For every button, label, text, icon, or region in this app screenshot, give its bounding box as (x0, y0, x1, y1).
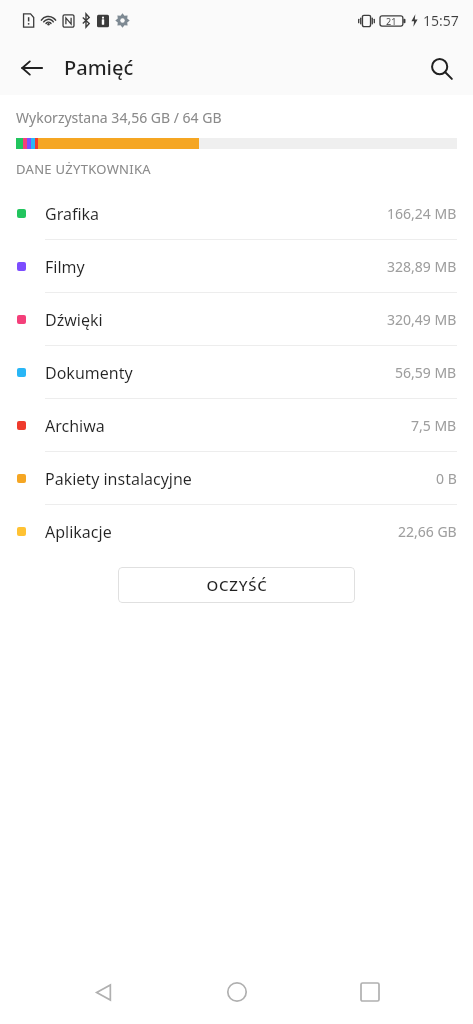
button[interactable]: Search (417, 44, 465, 92)
staticText: 320,49 MB (387, 310, 457, 329)
staticText: Aplikacje (45, 521, 112, 543)
staticText: Pamięć (64, 54, 134, 81)
button[interactable]: Back (73, 962, 133, 1022)
button[interactable]: Archiwa (0, 399, 473, 452)
staticText: 56,59 MB (395, 363, 457, 382)
button[interactable]: Filmy (0, 240, 473, 293)
staticText: Dokumenty (45, 362, 133, 384)
staticText: 15:57 (423, 11, 459, 30)
staticText: 22,66 GB (398, 522, 457, 541)
button[interactable]: Recent apps (340, 962, 400, 1022)
staticText: Wykorzystana 34,56 GB / 64 GB (16, 108, 222, 127)
staticText: Pakiety instalacyjne (45, 468, 192, 490)
button[interactable]: Dokumenty (0, 346, 473, 399)
button[interactable]: OCZYŚĆ (118, 567, 355, 603)
staticText: 7,5 MB (411, 416, 457, 435)
button[interactable]: Back (8, 44, 56, 92)
staticText: Dźwięki (45, 309, 103, 331)
staticText: 21 (386, 15, 397, 27)
staticText: 328,89 MB (387, 257, 457, 276)
staticText: Filmy (45, 256, 85, 278)
button[interactable]: Dźwięki (0, 293, 473, 346)
button[interactable]: Grafika (0, 187, 473, 240)
staticText: Grafika (45, 203, 100, 225)
staticText: 0 B (436, 469, 457, 488)
button[interactable]: Home (207, 962, 267, 1022)
button[interactable]: Aplikacje (0, 505, 473, 558)
staticText: OCZYŚĆ (206, 575, 268, 595)
staticText: Archiwa (45, 415, 105, 437)
button[interactable]: Pakiety instalacyjne (0, 452, 473, 505)
staticText: 166,24 MB (387, 204, 457, 223)
staticText: DANE UŻYTKOWNIKA (16, 160, 151, 178)
